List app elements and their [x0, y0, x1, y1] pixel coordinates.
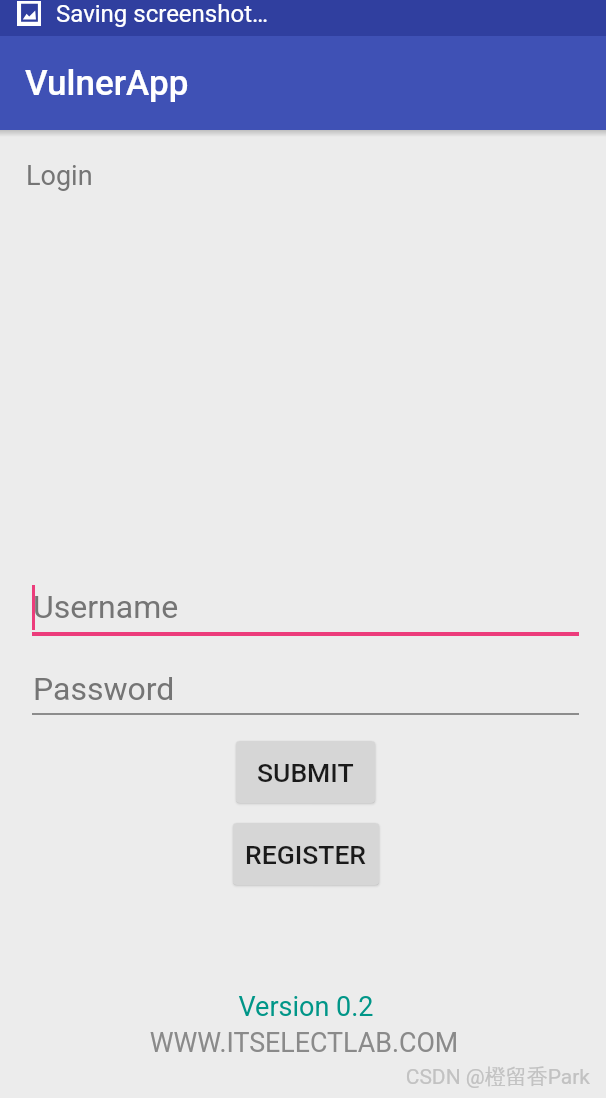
staticText: VulnerApp	[25, 63, 189, 104]
button[interactable]: Screenshot image	[10, 0, 272, 36]
staticText: Username	[33, 588, 179, 626]
staticText: Version 0.2	[3, 991, 606, 1023]
button[interactable]: Username	[26, 580, 579, 637]
staticText: Password	[33, 670, 175, 708]
other: Screenshot image	[17, 1, 41, 26]
button[interactable]: REGISTER	[233, 823, 379, 885]
staticText: Saving screenshot…	[56, 0, 269, 28]
staticText: REGISTER	[245, 839, 367, 870]
staticText: SUBMIT	[257, 757, 354, 788]
button[interactable]: SUBMIT	[236, 741, 375, 803]
button[interactable]: Password	[26, 664, 579, 716]
staticText: WWW.ITSELECTLAB.COM	[1, 1027, 606, 1058]
staticText: CSDN @橙留香Park	[0, 1064, 590, 1090]
staticText: Login	[26, 160, 93, 192]
